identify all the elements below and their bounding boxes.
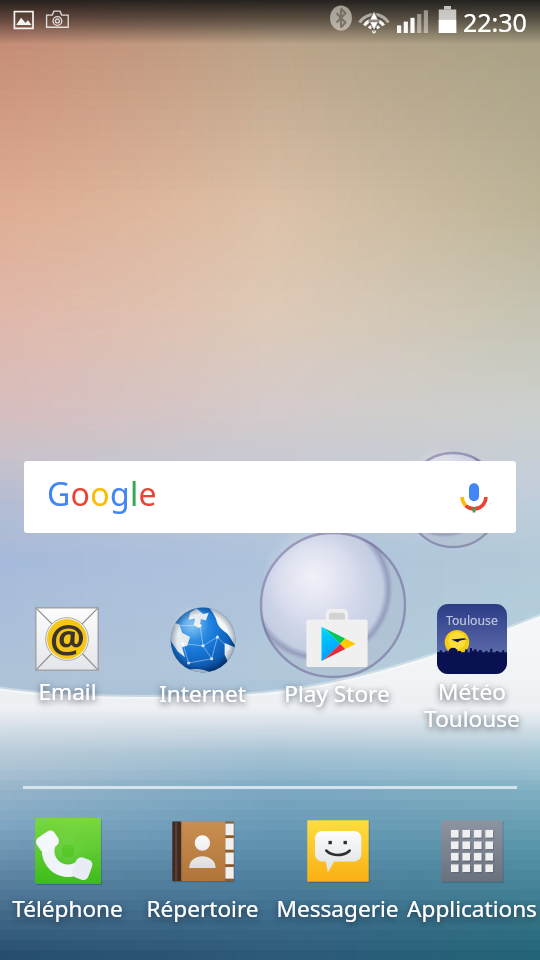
- staticText: Messagerie: [276, 893, 399, 924]
- staticText: Applications: [407, 893, 537, 924]
- button[interactable]: Screenshot: [9, 5, 39, 35]
- staticText: Google: [47, 472, 157, 516]
- button[interactable]: @: [0, 604, 134, 707]
- button[interactable]: Toulouse: [405, 604, 539, 734]
- staticText: Toulouse: [446, 612, 498, 629]
- button[interactable]: Applications: [405, 814, 539, 924]
- staticText: Météo Toulouse: [424, 676, 520, 734]
- staticText: Téléphone: [12, 893, 123, 924]
- staticText: Play Store: [284, 678, 390, 709]
- staticText: 22:30: [463, 5, 527, 39]
- button[interactable]: Répertoire: [135, 814, 269, 924]
- staticText: Email: [38, 676, 97, 707]
- button[interactable]: Téléphone: [0, 814, 134, 924]
- staticText: @: [50, 611, 85, 664]
- button[interactable]: Messagerie: [270, 814, 404, 924]
- button[interactable]: Play Store: [270, 604, 404, 709]
- button[interactable]: Internet: [135, 604, 269, 709]
- button[interactable]: Camera: [43, 5, 73, 35]
- button[interactable]: Google: [24, 461, 516, 533]
- staticText: Internet: [159, 678, 246, 709]
- staticText: Répertoire: [146, 893, 259, 924]
